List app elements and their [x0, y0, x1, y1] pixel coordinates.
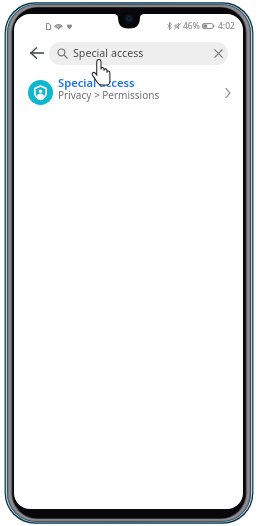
staticText: 4:02: [218, 20, 235, 32]
staticText: Special access: [58, 75, 135, 90]
button[interactable]: Special access: [49, 42, 228, 65]
button[interactable]: Back: [27, 43, 47, 63]
button[interactable]: Clear search: [210, 45, 227, 62]
button[interactable]: Special access: [14, 73, 243, 111]
staticText: Privacy > Permissions: [58, 88, 160, 102]
staticText: Special access: [73, 46, 144, 61]
staticText: 46%: [183, 20, 200, 32]
